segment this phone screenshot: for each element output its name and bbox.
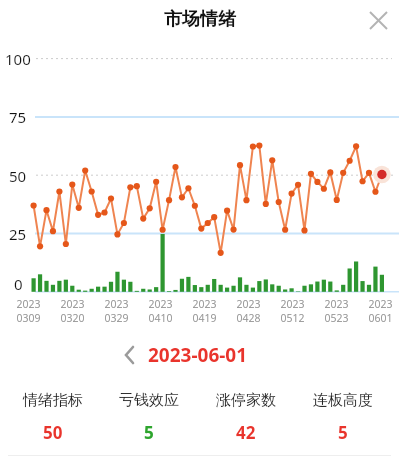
staticText: 2023 0320 [60,297,85,325]
staticText: 2023 0601 [368,297,393,325]
button[interactable]: 涨停家数 [197,391,294,444]
staticText: 2023 0523 [324,297,349,325]
button[interactable]: 亏钱效应 [101,391,197,444]
staticText: 2023 0419 [192,297,217,325]
staticText: 100 [5,49,31,69]
staticText: 2023 0410 [148,297,173,325]
button[interactable]: 情绪指标 [5,391,101,444]
staticText: 50 [9,166,27,186]
staticText: 75 [9,107,27,127]
staticText: 42 [236,421,256,444]
staticText: 2023 0309 [16,297,41,325]
staticText: 情绪指标 [23,391,83,410]
staticText: 2023 0428 [236,297,261,325]
staticText: 2023-06-01 [148,342,248,368]
button[interactable]: 2023-06-01 [122,342,248,368]
button[interactable]: 连板高度 [294,391,391,444]
staticText: 5 [338,421,348,444]
staticText: 2023 0329 [104,297,129,325]
staticText: 亏钱效应 [119,391,179,410]
staticText: 连板高度 [313,391,373,410]
button[interactable] [365,7,391,33]
staticText: 5 [144,421,154,444]
staticText: 2023 0512 [280,297,305,325]
staticText: 涨停家数 [216,391,276,410]
staticText: 50 [43,421,63,444]
staticText: 市场情绪 [164,8,236,31]
staticText: 0 [14,274,23,294]
staticText: 25 [9,224,27,244]
